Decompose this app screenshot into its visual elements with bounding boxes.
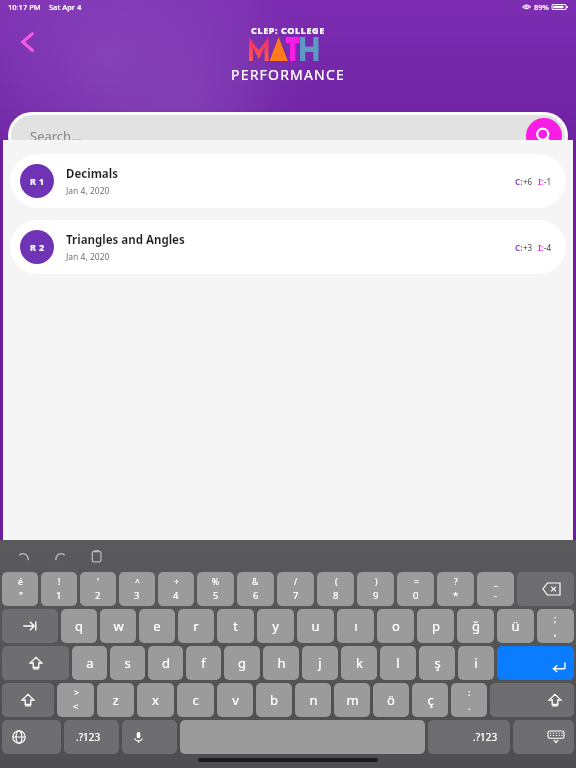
staticText: l: [396, 654, 400, 672]
button[interactable]: Tab: [2, 609, 58, 643]
button[interactable]: ı: [337, 609, 374, 643]
button[interactable]: v: [217, 683, 253, 717]
staticText: &: [252, 576, 259, 588]
button[interactable]: Shift: [2, 683, 54, 717]
button[interactable]: r: [178, 609, 214, 643]
staticText: d: [162, 654, 170, 672]
button[interactable]: j: [302, 646, 338, 680]
button[interactable]: ğ: [457, 609, 494, 643]
staticText: 7: [293, 589, 299, 602]
button[interactable]: ': [80, 572, 116, 606]
button[interactable]: _: [477, 572, 514, 606]
staticText: e: [153, 617, 161, 635]
button[interactable]: m: [334, 683, 370, 717]
button[interactable]: b: [256, 683, 292, 717]
button[interactable]: Undo: [14, 546, 34, 566]
button[interactable]: ): [357, 572, 394, 606]
button[interactable]: i: [458, 646, 494, 680]
button[interactable]: t: [217, 609, 254, 643]
button[interactable]: ş: [419, 646, 455, 680]
staticText: +6: [523, 176, 533, 187]
staticText: v: [232, 691, 239, 709]
button[interactable]: (: [317, 572, 354, 606]
button[interactable]: Paste: [86, 546, 106, 566]
staticText: 0: [413, 589, 419, 602]
staticText: Search...: [30, 127, 82, 145]
button[interactable]: /: [277, 572, 314, 606]
button[interactable]: c: [177, 683, 214, 717]
button[interactable]: .?123: [428, 720, 510, 754]
staticText: I:: [538, 242, 544, 253]
button[interactable]: l: [380, 646, 416, 680]
staticText: 10:17 PM: [8, 2, 41, 12]
button[interactable]: %: [197, 572, 234, 606]
button[interactable]: p: [417, 609, 454, 643]
button[interactable]: >: [57, 683, 94, 717]
staticText: m: [346, 691, 359, 709]
button[interactable]: +: [158, 572, 194, 606]
staticText: b: [270, 691, 278, 709]
staticText: ş: [434, 654, 441, 672]
staticText: .?123: [473, 730, 498, 744]
button[interactable]: o: [377, 609, 414, 643]
staticText: 2: [95, 589, 101, 602]
button[interactable]: u: [297, 609, 334, 643]
button[interactable]: s: [110, 646, 145, 680]
button[interactable]: ç: [412, 683, 448, 717]
button[interactable]: Search: [526, 118, 562, 154]
button[interactable]: Enter: [497, 646, 574, 680]
button[interactable]: g: [224, 646, 260, 680]
button[interactable]: Shift: [490, 683, 574, 717]
staticText: f: [201, 654, 206, 672]
staticText: 89%: [534, 2, 549, 12]
button[interactable]: R 1: [10, 154, 566, 208]
button[interactable]: ;: [537, 609, 574, 643]
button[interactable]: =: [397, 572, 434, 606]
button[interactable]: Back: [8, 22, 48, 62]
button[interactable]: q: [61, 609, 97, 643]
button[interactable]: Backspace: [517, 572, 574, 606]
button[interactable]: Hide keyboard: [513, 720, 574, 754]
button[interactable]: h: [263, 646, 299, 680]
staticText: k: [356, 654, 363, 672]
button[interactable]: y: [257, 609, 294, 643]
staticText: 6: [253, 589, 259, 602]
button[interactable]: n: [295, 683, 331, 717]
button[interactable]: x: [137, 683, 174, 717]
staticText: -1: [544, 176, 552, 187]
button[interactable]: &: [237, 572, 274, 606]
staticText: Sat Apr 4: [49, 2, 82, 12]
button[interactable]: ü: [497, 609, 534, 643]
staticText: C:: [515, 242, 523, 253]
button[interactable]: é: [2, 572, 38, 606]
button[interactable]: z: [97, 683, 134, 717]
staticText: 8: [333, 589, 339, 602]
button[interactable]: Change language: [2, 720, 61, 754]
button[interactable]: Voice input: [122, 720, 177, 754]
button[interactable]: ?: [437, 572, 474, 606]
staticText: +3: [523, 242, 533, 253]
button[interactable]: f: [186, 646, 221, 680]
staticText: t: [233, 617, 238, 635]
button[interactable]: R 2: [10, 220, 566, 274]
button[interactable]: e: [139, 609, 175, 643]
button[interactable]: d: [148, 646, 183, 680]
button[interactable]: Redo: [50, 546, 70, 566]
button[interactable]: .?123: [64, 720, 119, 754]
staticText: <: [73, 700, 79, 713]
button[interactable]: Search...: [11, 115, 565, 157]
button[interactable]: w: [100, 609, 136, 643]
button[interactable]: ^: [119, 572, 155, 606]
button[interactable]: k: [341, 646, 377, 680]
button[interactable]: !: [41, 572, 77, 606]
button[interactable]: ö: [373, 683, 409, 717]
staticText: .?123: [76, 730, 101, 744]
button[interactable]: Shift: [2, 646, 69, 680]
button[interactable]: a: [72, 646, 107, 680]
button[interactable]: Space: [180, 720, 425, 754]
button[interactable]: :: [451, 683, 487, 717]
staticText: CLEP: COLLEGE: [251, 24, 325, 36]
staticText: s: [124, 654, 131, 672]
staticText: =: [414, 576, 419, 588]
staticText: ': [97, 576, 99, 588]
